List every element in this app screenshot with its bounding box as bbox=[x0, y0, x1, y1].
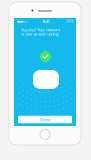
staticText: 100% bbox=[65, 20, 73, 23]
button[interactable]: Done bbox=[18, 116, 72, 123]
staticText: is now up and running. bbox=[21, 31, 59, 37]
staticText: Success! Your network bbox=[21, 27, 60, 32]
staticText: Done bbox=[40, 117, 50, 122]
staticText: ●●●○○ bbox=[17, 20, 27, 23]
staticText: 9:41 bbox=[42, 19, 49, 24]
